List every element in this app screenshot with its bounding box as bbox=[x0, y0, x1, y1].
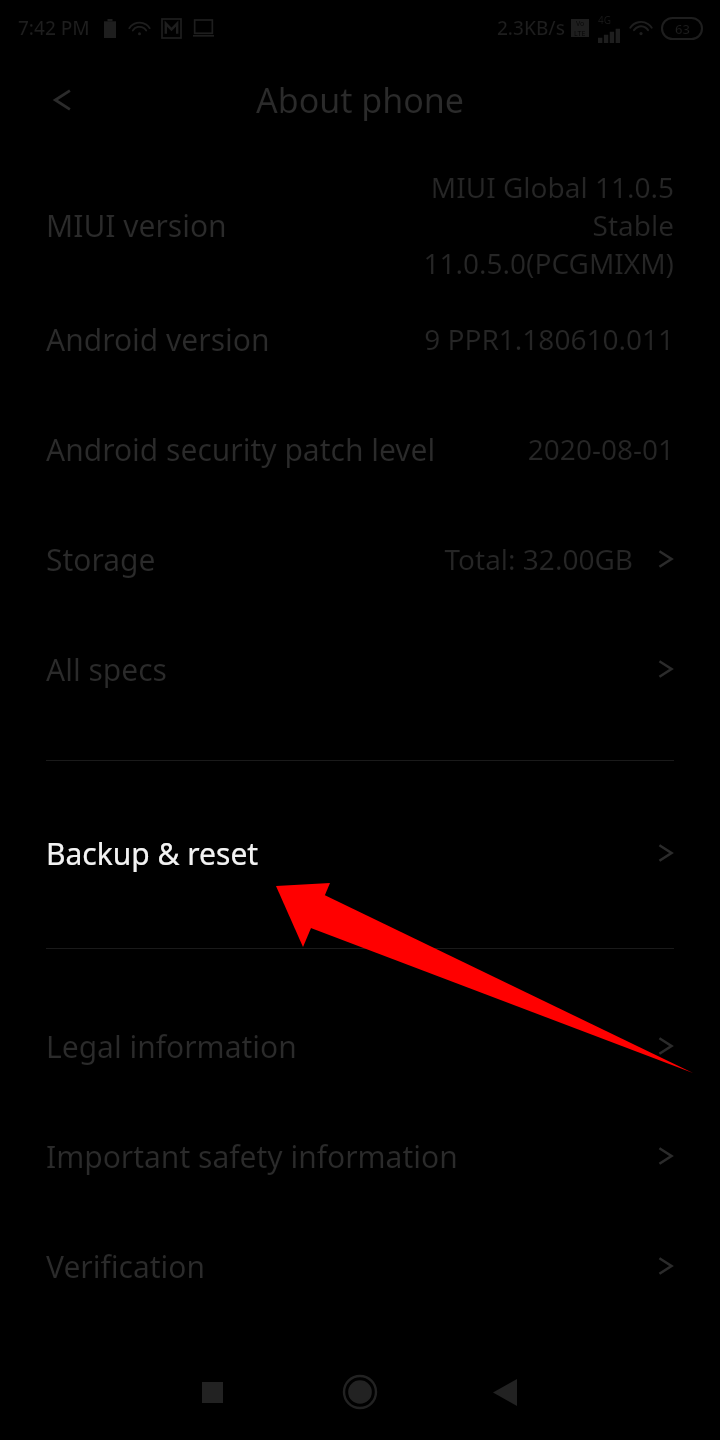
staticText: Storage bbox=[46, 539, 156, 580]
staticText: Stable bbox=[592, 206, 674, 244]
staticText: Vo bbox=[576, 19, 585, 29]
staticText: Android security patch level bbox=[46, 429, 436, 470]
button[interactable]: Verification bbox=[0, 1211, 720, 1321]
staticText: Android version bbox=[46, 319, 270, 360]
staticText: Verification bbox=[46, 1246, 205, 1287]
staticText: 7:42 PM bbox=[18, 15, 90, 41]
button[interactable]: Storage bbox=[0, 504, 720, 614]
staticText: Total: 32.00GB bbox=[444, 540, 633, 578]
staticText: 63 bbox=[675, 20, 690, 38]
button[interactable]: Home bbox=[334, 1366, 386, 1418]
staticText: 4G bbox=[598, 13, 611, 27]
staticText: About phone bbox=[256, 77, 465, 123]
button[interactable]: Legal information bbox=[0, 991, 720, 1101]
staticText: 11.0.5.0(PCGMIXM) bbox=[423, 244, 674, 282]
button[interactable]: Important safety information bbox=[0, 1101, 720, 1211]
staticText: Important safety information bbox=[46, 1136, 458, 1177]
staticText: LTE bbox=[574, 29, 586, 37]
staticText: 2020-08-01 bbox=[527, 430, 674, 468]
button[interactable]: Backup & reset bbox=[0, 803, 720, 903]
button[interactable]: Navigate up bbox=[36, 74, 88, 126]
staticText: All specs bbox=[46, 649, 167, 690]
button[interactable]: Recent apps bbox=[190, 1370, 234, 1414]
button[interactable]: Android security patch level bbox=[0, 394, 720, 504]
button[interactable]: Back bbox=[483, 1370, 527, 1414]
button[interactable]: MIUI version bbox=[0, 166, 720, 284]
staticText: Legal information bbox=[46, 1026, 297, 1067]
staticText: 9 PPR1.180610.011 bbox=[424, 320, 674, 358]
button[interactable]: All specs bbox=[0, 614, 720, 724]
staticText: MIUI version bbox=[46, 205, 227, 246]
staticText: MIUI Global 11.0.5 bbox=[430, 168, 674, 206]
button[interactable]: Android version bbox=[0, 284, 720, 394]
staticText: 2.3KB/s bbox=[497, 15, 565, 41]
staticText: Backup & reset bbox=[46, 833, 259, 874]
